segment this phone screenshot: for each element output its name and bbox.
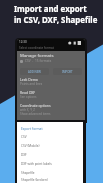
staticText: with X, Y, Z: [20, 108, 36, 112]
staticText: IMPORT: [62, 70, 73, 74]
button[interactable]: Shapefile: [17, 168, 83, 177]
button[interactable]: DXF with point labels: [17, 159, 83, 168]
staticText: Points and lines: [20, 82, 43, 86]
staticText: CSV (Mobile): [21, 144, 40, 148]
button[interactable]: Shapefile (broken): [17, 177, 83, 183]
staticText: ADD NEW: [28, 70, 41, 74]
button[interactable]: ADD NEW: [20, 68, 49, 75]
staticText: Coordinate options: [20, 103, 51, 108]
staticText: See options: [20, 95, 37, 99]
button[interactable]: IMPORT: [53, 68, 82, 75]
staticText: Import and export in CSV, DXF, Shapefile: [14, 4, 98, 25]
button[interactable]: Read DXF: [20, 90, 82, 99]
staticText: DXF with point labels: [21, 162, 52, 166]
button[interactable]: CSV (Mobile): [17, 141, 83, 150]
staticText: Select coordinate format: [19, 46, 54, 50]
staticText: Shapefile: [21, 171, 35, 175]
staticText: Manage formats: [20, 52, 54, 58]
staticText: 12:30: [19, 40, 27, 44]
button[interactable]: Coordinate options: [20, 103, 82, 116]
staticText: Show advanced items: [20, 112, 51, 116]
button[interactable]: Leek Demo: [20, 77, 82, 86]
button[interactable]: DXF: [17, 150, 83, 159]
button[interactable]: CSV: [17, 132, 83, 141]
staticText: DXF: [21, 153, 27, 157]
staticText: Shapefile (broken): [21, 178, 48, 182]
staticText: Leek Demo: [20, 77, 38, 82]
staticText: Export format: [21, 126, 43, 130]
staticText: Read DXF: [20, 90, 36, 95]
staticText: CSV - 15 formats: [25, 59, 52, 63]
staticText: CSV: [21, 135, 27, 139]
